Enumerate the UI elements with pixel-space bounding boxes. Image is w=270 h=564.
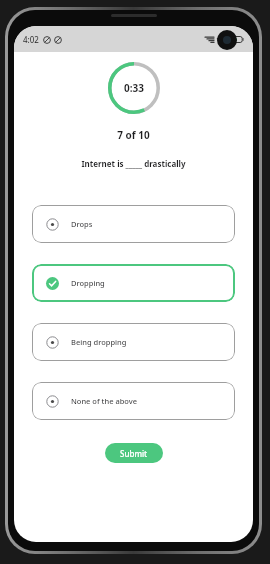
staticText: None of the above	[71, 396, 138, 406]
button[interactable]: Being dropping	[32, 323, 235, 361]
staticText: Drops	[71, 219, 93, 229]
button[interactable]: Dropping	[32, 264, 235, 302]
button[interactable]: None of the above	[32, 382, 235, 420]
staticText: Internet is _____ drastically	[14, 158, 253, 169]
staticText: Being dropping	[71, 337, 127, 347]
staticText: 4:02	[23, 34, 39, 45]
staticText: 7 of 10	[14, 128, 253, 142]
staticText: Submit	[120, 448, 148, 459]
button[interactable]: Submit	[105, 443, 163, 463]
staticText: 0:33	[124, 81, 144, 95]
button[interactable]: Drops	[32, 205, 235, 243]
staticText: Dropping	[71, 278, 105, 288]
